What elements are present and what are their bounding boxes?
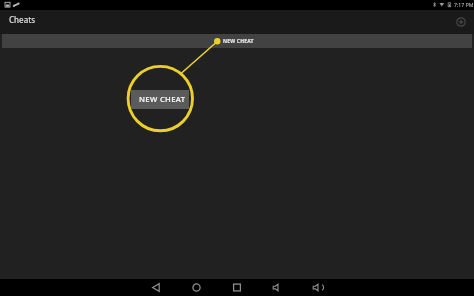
button[interactable]: Volume up [310,279,328,296]
button[interactable]: Home [188,279,206,296]
staticText: NEW CHEAT [139,94,186,104]
button[interactable]: Volume down [269,279,287,296]
button[interactable]: Recent apps [228,279,246,296]
button[interactable]: Back [148,279,166,296]
button[interactable]: NEW CHEAT [131,90,189,109]
staticText: 7:17 PM [454,1,474,8]
staticText: NEW CHEAT [223,38,254,45]
button[interactable]: Add cheat [453,14,469,30]
staticText: Cheats [9,14,36,25]
